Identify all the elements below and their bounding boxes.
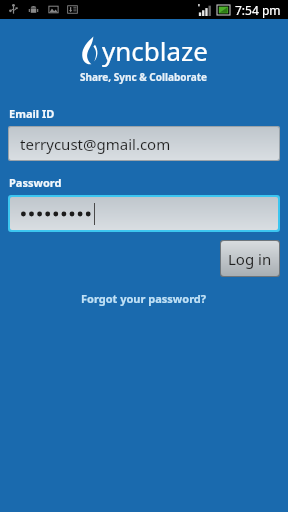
other: Syncblaze droplet logo [81, 36, 101, 65]
button[interactable]: Log in [221, 241, 279, 276]
staticText: Forgot your password? [81, 291, 207, 306]
staticText: 7:54 pm [235, 2, 281, 18]
staticText: Share, Sync & Collaborate [80, 70, 208, 84]
staticText: terrycust@gmail.com [20, 134, 171, 154]
staticText: Password [9, 175, 62, 190]
staticText: Email ID [9, 106, 55, 121]
staticText: Log in [228, 249, 272, 269]
button[interactable] [10, 197, 278, 230]
button[interactable]: Forgot your password? [71, 288, 217, 309]
staticText: yncblaze [102, 33, 208, 68]
button[interactable]: terrycust@gmail.com [9, 127, 279, 160]
